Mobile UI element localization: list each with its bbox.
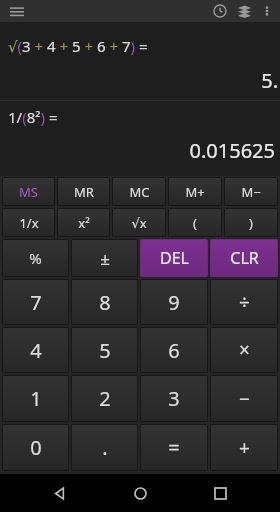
button[interactable]: √x <box>113 209 165 236</box>
button[interactable]: Menu <box>6 0 28 22</box>
button[interactable]: ± <box>72 240 137 276</box>
staticText: ( <box>193 214 197 232</box>
staticText: 9 <box>168 289 180 316</box>
button[interactable]: 7 <box>3 280 68 324</box>
staticText: 1/x <box>19 214 39 232</box>
button[interactable]: 3 <box>141 376 207 421</box>
staticText: − <box>239 386 250 412</box>
button[interactable]: = <box>141 425 207 470</box>
button[interactable]: . <box>72 425 137 470</box>
button[interactable]: ( <box>169 209 221 236</box>
staticText: MR <box>74 183 94 201</box>
button[interactable]: 6 <box>141 328 207 372</box>
staticText: 8 <box>99 289 111 316</box>
button[interactable]: % <box>3 240 68 276</box>
button[interactable]: MC <box>113 178 165 205</box>
staticText: √x <box>131 214 147 232</box>
staticText: % <box>29 248 42 268</box>
staticText: 5 <box>99 337 111 364</box>
staticText: MS <box>19 183 38 201</box>
staticText: 0.015625 <box>0 137 275 164</box>
button[interactable]: + <box>211 425 277 470</box>
staticText: 1/(8²) = <box>8 107 280 127</box>
button[interactable]: More options <box>256 0 278 22</box>
staticText: 0 <box>30 434 42 461</box>
staticText: + <box>239 435 250 461</box>
staticText: = <box>168 434 180 461</box>
staticText: ÷ <box>239 289 250 315</box>
button[interactable]: Back <box>40 474 80 512</box>
staticText: 1 <box>30 385 42 412</box>
button[interactable]: ÷ <box>211 280 277 324</box>
staticText: x² <box>78 214 90 232</box>
button[interactable]: Recents <box>200 474 240 512</box>
staticText: MC <box>129 183 150 201</box>
staticText: × <box>239 337 250 363</box>
button[interactable]: − <box>211 376 277 421</box>
button[interactable]: 1/x <box>3 209 54 236</box>
staticText: M− <box>241 183 261 201</box>
button[interactable]: 9 <box>141 280 207 324</box>
staticText: ) <box>249 214 253 232</box>
button[interactable]: × <box>211 328 277 372</box>
staticText: DEL <box>160 247 189 269</box>
staticText: M+ <box>185 183 205 201</box>
staticText: 5. <box>0 67 278 94</box>
button[interactable]: 8 <box>72 280 137 324</box>
staticText: CLR <box>230 247 259 269</box>
staticText: 4 <box>30 337 42 364</box>
button[interactable]: 2 <box>72 376 137 421</box>
staticText: 3 <box>168 385 180 412</box>
button[interactable]: x² <box>58 209 109 236</box>
button[interactable]: Layers <box>232 0 256 22</box>
button[interactable]: History <box>208 0 232 22</box>
button[interactable]: 0 <box>3 425 68 470</box>
button[interactable]: M+ <box>169 178 221 205</box>
button[interactable]: MS <box>3 178 54 205</box>
button[interactable]: DEL <box>141 240 207 276</box>
staticText: 6 <box>168 337 180 364</box>
button[interactable]: M− <box>225 178 277 205</box>
button[interactable]: 1 <box>3 376 68 421</box>
button[interactable]: ) <box>225 209 277 236</box>
button[interactable]: 5 <box>72 328 137 372</box>
button[interactable]: Home <box>120 474 160 512</box>
staticText: √(3 + 4 + 5 + 6 + 7) = <box>8 36 280 56</box>
staticText: 2 <box>99 385 111 412</box>
button[interactable]: CLR <box>211 240 277 276</box>
staticText: ± <box>100 247 110 270</box>
button[interactable]: 4 <box>3 328 68 372</box>
staticText: . <box>102 434 108 461</box>
button[interactable]: MR <box>58 178 109 205</box>
staticText: 7 <box>30 289 42 316</box>
